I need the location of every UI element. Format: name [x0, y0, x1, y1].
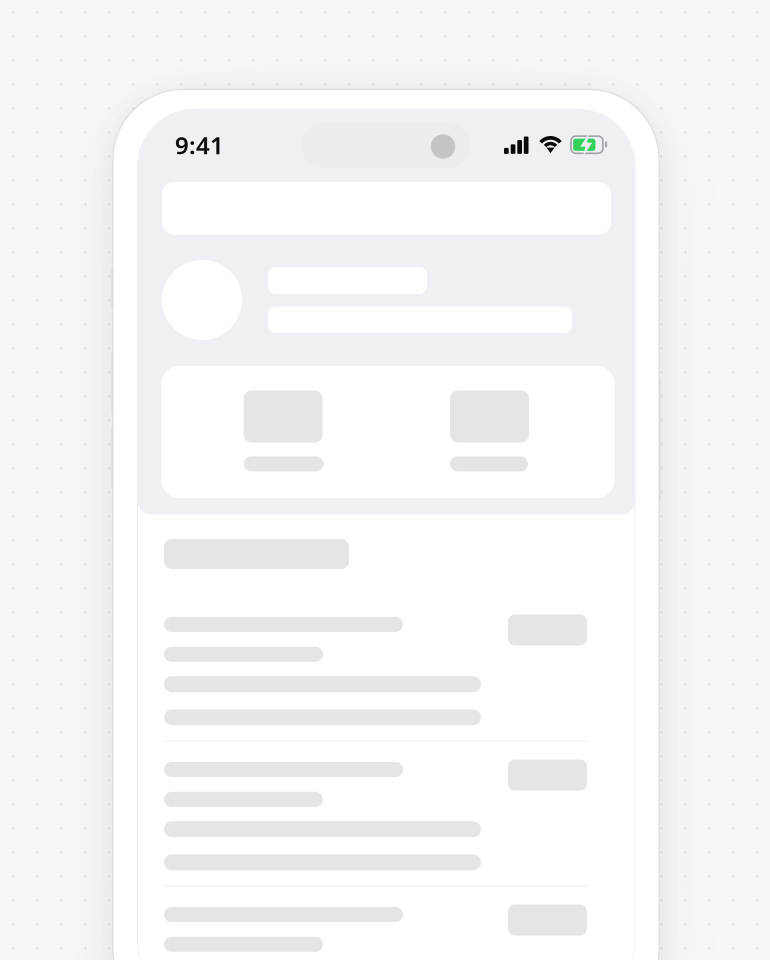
button[interactable]: Shortcut two — [450, 390, 530, 471]
button[interactable]: List item — [164, 904, 588, 960]
staticText: 9:41 — [175, 129, 224, 161]
button[interactable]: Shortcut one — [244, 390, 324, 471]
button[interactable]: List item — [164, 759, 588, 873]
button[interactable]: List item — [164, 614, 588, 728]
